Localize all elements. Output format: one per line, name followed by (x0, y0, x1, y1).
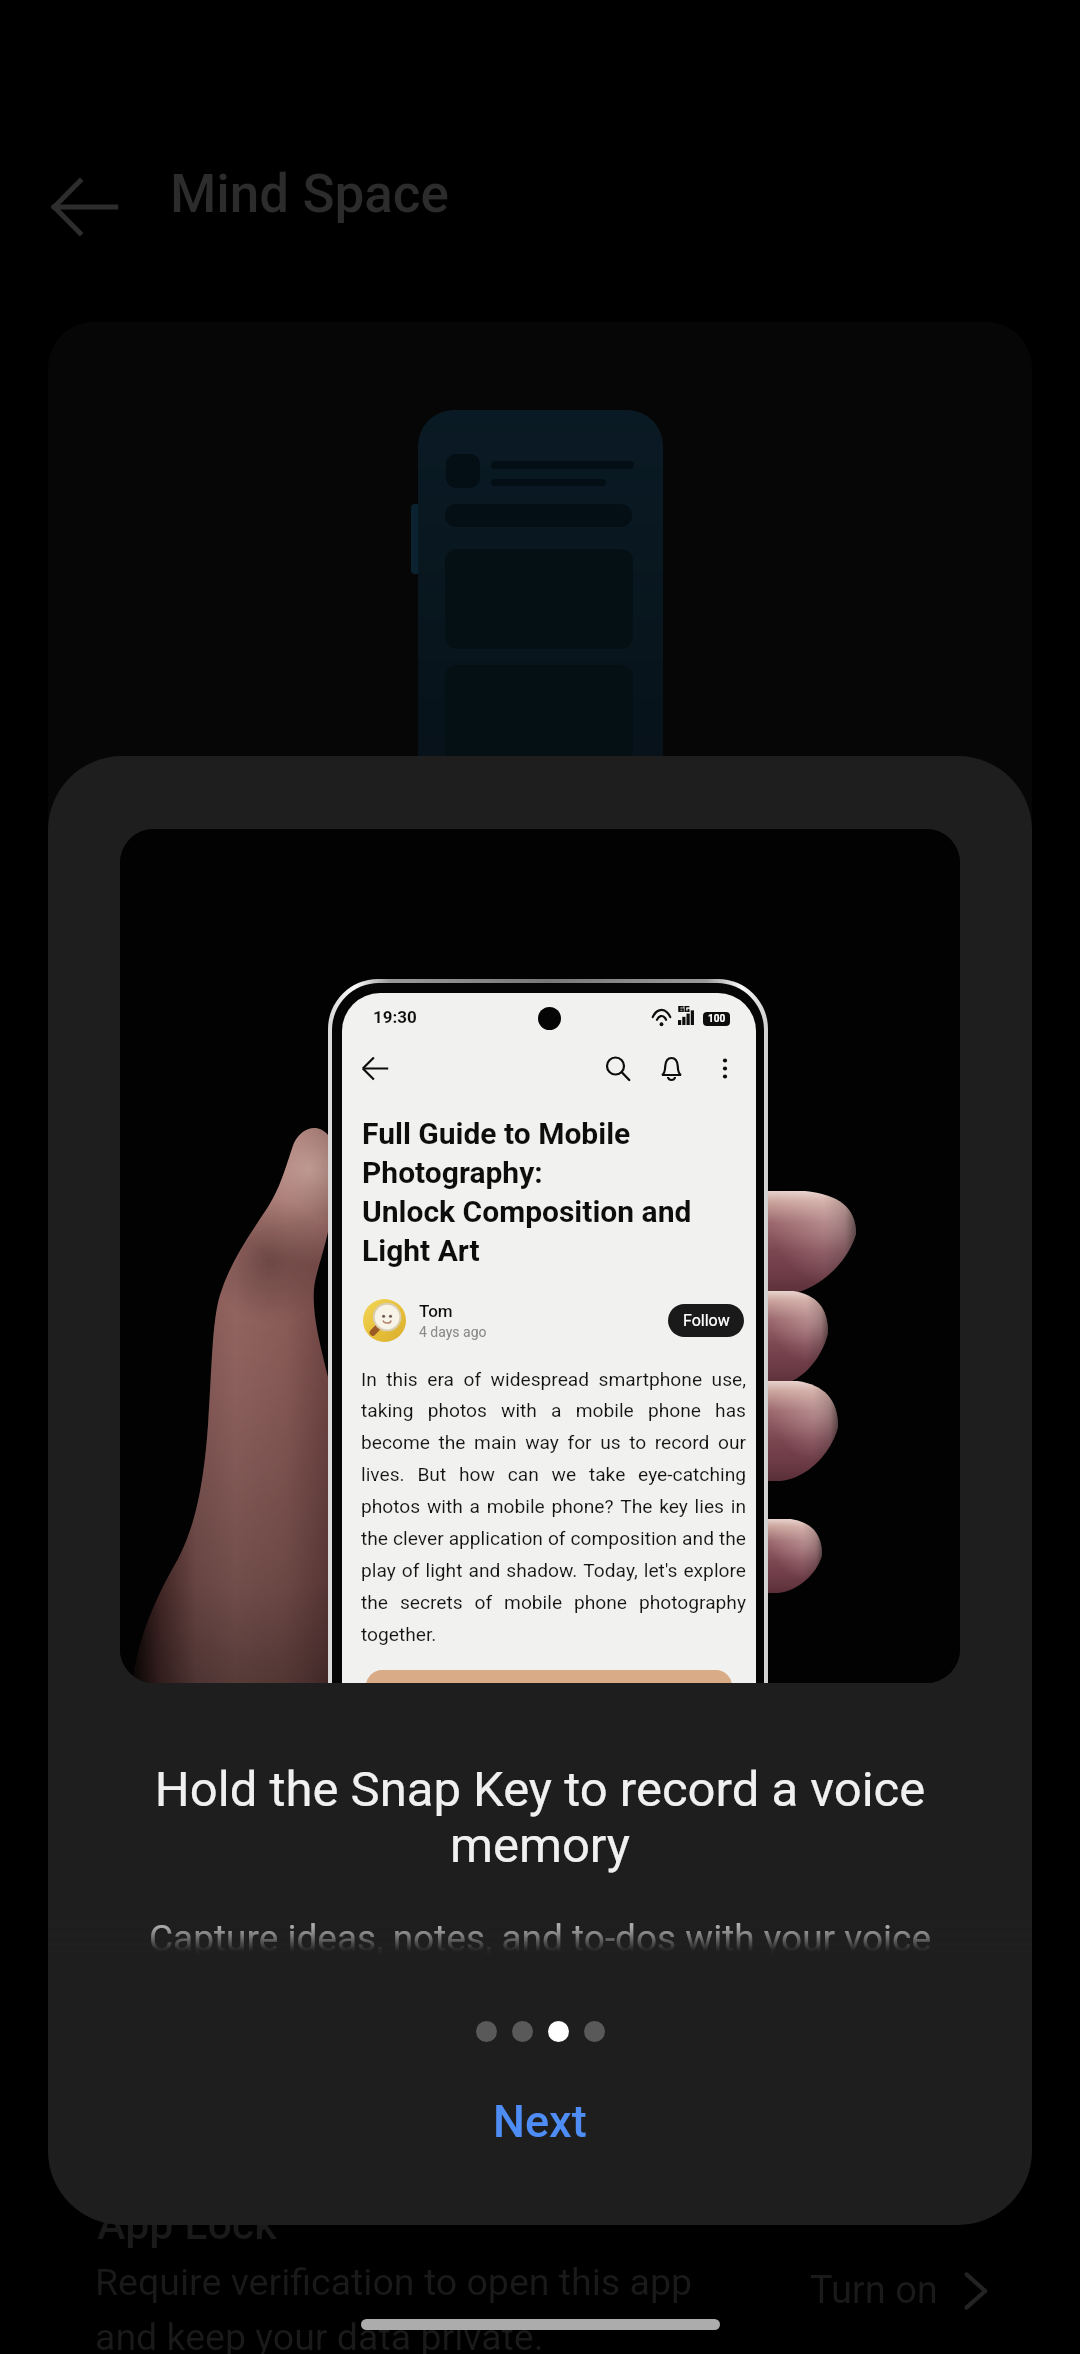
button[interactable]: Notifications (654, 1051, 688, 1085)
staticText: Turn on (810, 2268, 938, 2313)
staticText: Next (493, 2095, 587, 2148)
staticText: 4 days ago (419, 1324, 487, 1340)
staticText: In this era of widespread smartphone use… (361, 1368, 746, 1646)
staticText: Hold the Snap Key to record a voice memo… (140, 1761, 940, 1874)
button[interactable]: More options (708, 1051, 742, 1085)
button[interactable]: Next (445, 2076, 635, 2167)
button[interactable]: Back (358, 1051, 392, 1085)
staticText: App Lock (97, 2199, 277, 2249)
button[interactable]: Back (36, 158, 134, 256)
staticText: Tom (419, 1301, 453, 1321)
button[interactable]: Follow (668, 1304, 744, 1337)
staticText: Full Guide to Mobile Photography: Unlock… (362, 1116, 745, 1268)
staticText: Mind Space (170, 163, 449, 225)
staticText: Follow (683, 1311, 730, 1330)
staticText: 19:30 (373, 1007, 417, 1027)
staticText: 100 (708, 1013, 726, 1025)
staticText: Require verification to open this app an… (95, 2260, 693, 2354)
staticText: Capture ideas, notes, and to-dos with yo… (48, 1917, 1032, 1960)
button[interactable]: Search (600, 1051, 634, 1085)
